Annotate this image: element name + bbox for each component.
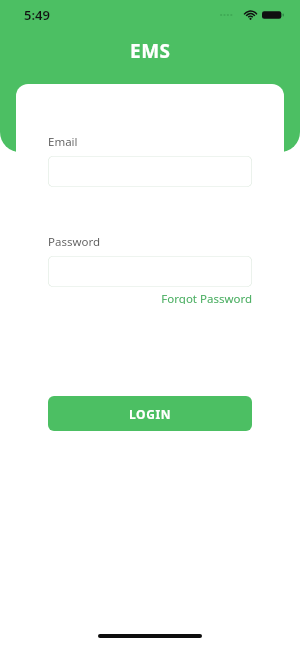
staticText: 5:49	[24, 6, 50, 24]
button[interactable]: LOGIN	[48, 396, 252, 431]
button[interactable]	[48, 156, 252, 187]
staticText: LOGIN	[129, 406, 172, 422]
button[interactable]	[48, 256, 252, 287]
staticText: EMS	[130, 38, 171, 64]
staticText: Password	[48, 234, 101, 250]
staticText: Email	[48, 134, 78, 150]
button[interactable]: Forgot Password	[161, 291, 252, 304]
